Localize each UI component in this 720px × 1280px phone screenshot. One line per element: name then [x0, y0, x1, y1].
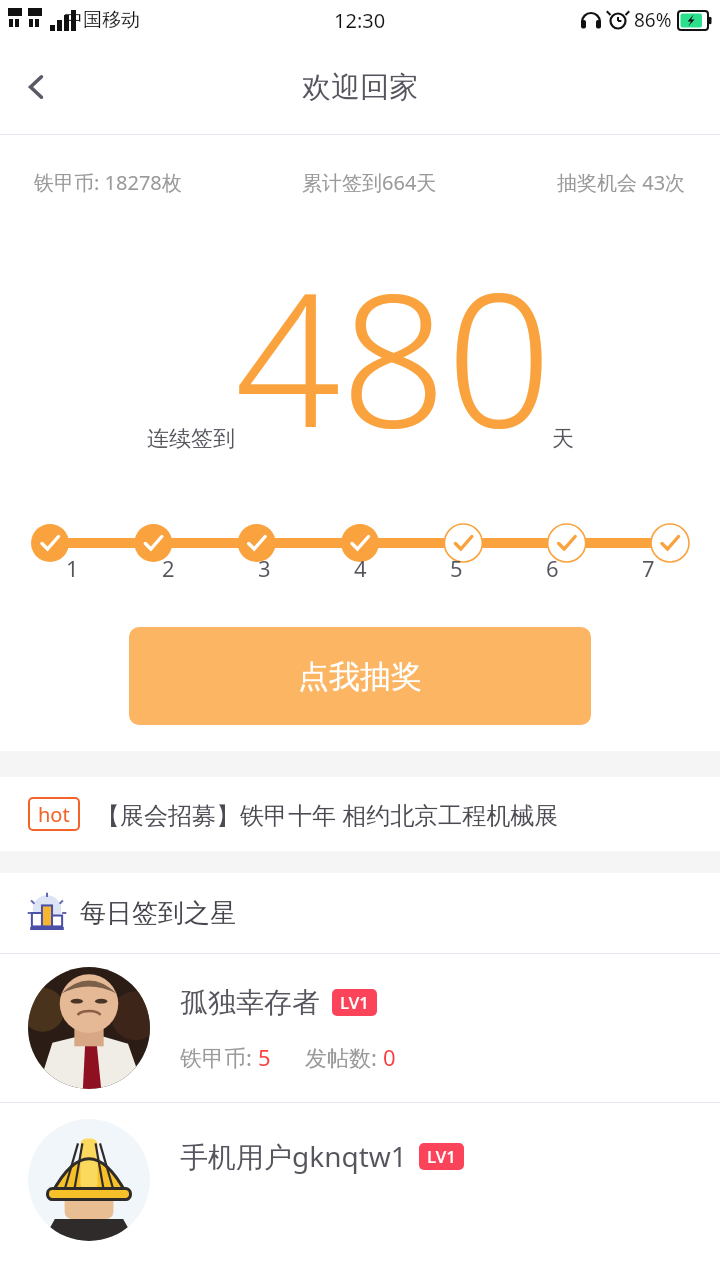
staticText: hot	[38, 801, 70, 828]
staticText: 5	[450, 553, 463, 583]
staticText: 7	[642, 553, 655, 583]
button[interactable]: Back	[0, 51, 72, 123]
button[interactable]: 点我抽奖	[129, 627, 591, 725]
button[interactable]: hot	[0, 777, 720, 851]
staticText: 5	[258, 1042, 271, 1072]
staticText: LV1	[427, 1145, 456, 1168]
staticText: 1	[66, 553, 79, 583]
staticText: 2	[162, 553, 175, 583]
staticText: 12:30	[334, 7, 386, 34]
staticText: 86%	[634, 7, 672, 33]
staticText: 手机用户gknqtw1	[180, 1137, 407, 1175]
staticText: 欢迎回家	[302, 69, 418, 106]
button[interactable]: 孤独幸存者	[0, 954, 720, 1102]
staticText: 发帖数:	[305, 1042, 383, 1072]
staticText: 6	[546, 553, 559, 583]
staticText: 3	[258, 553, 271, 583]
staticText: LV1	[340, 991, 369, 1014]
staticText: 抽奖机会 43次	[557, 169, 686, 196]
staticText: 中国移动	[64, 8, 140, 32]
staticText: 【展会招募】铁甲十年 相约北京工程机械展	[96, 798, 559, 831]
staticText: 铁甲币: 18278枚	[34, 169, 182, 196]
staticText: 0	[383, 1042, 396, 1072]
staticText: 天	[552, 425, 574, 453]
staticText: 每日签到之星	[80, 897, 236, 930]
staticText: 连续签到	[147, 425, 235, 453]
staticText: 孤独幸存者	[180, 985, 320, 1020]
staticText: 点我抽奖	[298, 657, 422, 696]
staticText: 480	[235, 229, 552, 479]
staticText: 累计签到664天	[302, 169, 437, 196]
staticText: 4	[354, 553, 367, 583]
staticText: 铁甲币:	[180, 1042, 258, 1072]
button[interactable]: 手机用户gknqtw1	[0, 1103, 720, 1280]
